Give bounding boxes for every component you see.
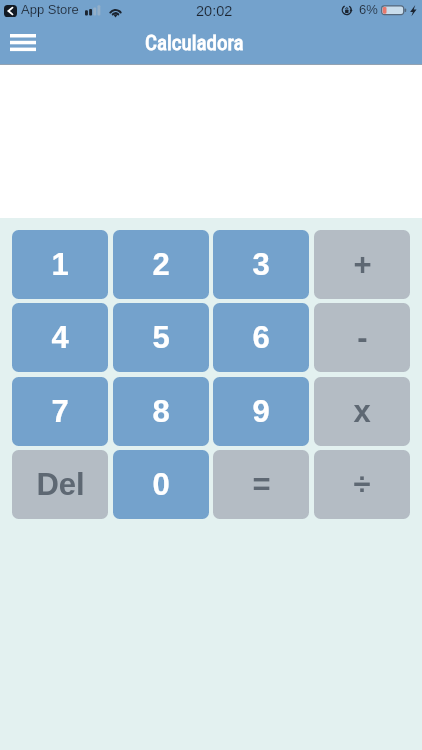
button[interactable]: ÷ <box>314 450 410 519</box>
button[interactable]: Menu <box>4 28 42 56</box>
staticText: 7 <box>51 394 69 429</box>
button[interactable]: 3 <box>213 230 309 299</box>
button[interactable]: + <box>314 230 410 299</box>
button[interactable]: - <box>314 303 410 372</box>
button[interactable]: 7 <box>12 377 108 446</box>
button[interactable]: 9 <box>213 377 309 446</box>
button[interactable]: 5 <box>113 303 209 372</box>
staticText: 20:02 <box>196 3 233 19</box>
staticText: 4 <box>51 320 69 355</box>
staticText: 1 <box>51 247 69 282</box>
button[interactable]: = <box>213 450 309 519</box>
staticText: 2 <box>152 247 170 282</box>
staticText: 6% <box>359 2 378 17</box>
staticText: 8 <box>152 394 170 429</box>
staticText: 3 <box>252 247 270 282</box>
button[interactable]: Del <box>12 450 108 519</box>
staticText: Calculadora <box>145 31 244 56</box>
button[interactable]: 4 <box>12 303 108 372</box>
button[interactable]: 6 <box>213 303 309 372</box>
staticText: App Store <box>21 2 79 17</box>
staticText: - <box>357 320 368 355</box>
button[interactable]: x <box>314 377 410 446</box>
staticText: 9 <box>252 394 270 429</box>
button[interactable]: 8 <box>113 377 209 446</box>
staticText: 6 <box>252 320 270 355</box>
staticText: 0 <box>152 467 170 502</box>
staticText: Del <box>36 467 85 502</box>
button[interactable]: 1 <box>12 230 108 299</box>
staticText: + <box>353 247 372 282</box>
staticText: 5 <box>152 320 170 355</box>
button[interactable]: 2 <box>113 230 209 299</box>
staticText: = <box>252 467 271 502</box>
staticText: ÷ <box>353 467 371 502</box>
staticText: x <box>353 394 371 429</box>
button[interactable]: 0 <box>113 450 209 519</box>
